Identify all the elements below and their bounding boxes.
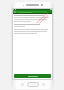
button[interactable]: Menu xyxy=(13,10,16,13)
button[interactable] xyxy=(14,74,51,78)
button[interactable] xyxy=(17,11,47,13)
button[interactable]: Home xyxy=(27,82,39,87)
